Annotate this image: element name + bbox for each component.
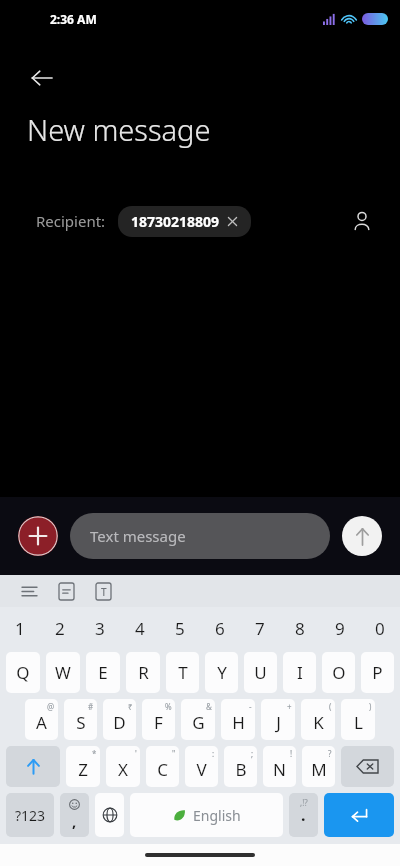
staticText: 1 <box>15 617 25 640</box>
button[interactable]: Back <box>20 56 64 100</box>
button[interactable]: 2 <box>40 607 80 649</box>
staticText: ₹ <box>128 701 133 712</box>
staticText: Z <box>78 758 88 781</box>
button[interactable]: ) <box>341 699 375 740</box>
staticText: L <box>354 711 363 734</box>
button[interactable]: Q <box>6 652 40 693</box>
button[interactable]: % <box>142 699 175 740</box>
button[interactable]: * <box>66 746 100 787</box>
button[interactable]: R <box>126 652 160 693</box>
staticText: 0 <box>375 617 385 640</box>
button[interactable]: Change language <box>95 793 124 837</box>
button[interactable]: Y <box>205 652 238 693</box>
staticText: S <box>76 711 86 734</box>
button[interactable]: Shift <box>6 746 60 787</box>
staticText: N <box>273 758 286 781</box>
button[interactable]: 8 <box>280 607 320 649</box>
button[interactable]: 9 <box>320 607 360 649</box>
staticText: E <box>98 661 108 684</box>
staticText: ; <box>251 748 254 759</box>
button[interactable]: Comma and emoji <box>60 793 89 837</box>
staticText: ( <box>329 701 332 712</box>
staticText: U <box>254 661 267 684</box>
staticText: Text message <box>90 526 186 546</box>
button[interactable]: Add attachment <box>18 516 58 556</box>
button[interactable]: Contacts <box>342 201 382 241</box>
staticText: & <box>206 701 212 712</box>
button[interactable]: Text editing <box>88 576 118 606</box>
button[interactable]: 7 <box>240 607 280 649</box>
button[interactable]: English <box>130 793 283 837</box>
button[interactable]: Clipboard <box>51 576 81 606</box>
button[interactable]: 0 <box>360 607 400 649</box>
button[interactable]: : <box>185 746 218 787</box>
staticText: + <box>287 701 292 712</box>
staticText: I <box>297 661 303 684</box>
staticText: 9 <box>335 617 345 640</box>
staticText: 3 <box>95 617 105 640</box>
staticText: 18730218809 <box>131 212 220 231</box>
button[interactable]: O <box>322 652 355 693</box>
button[interactable]: Enter <box>324 793 394 837</box>
button[interactable]: E <box>86 652 120 693</box>
staticText: B <box>235 758 247 781</box>
staticText: K <box>313 711 324 734</box>
button[interactable]: " <box>146 746 179 787</box>
button[interactable]: T <box>166 652 199 693</box>
staticText: X <box>118 758 128 781</box>
button[interactable]: ? <box>302 746 335 787</box>
button[interactable]: Backspace <box>341 746 394 787</box>
staticText: - <box>249 701 252 712</box>
button[interactable]: Period <box>289 793 318 837</box>
staticText: 4 <box>135 617 145 640</box>
staticText: ! <box>290 748 293 759</box>
staticText: R <box>138 661 149 684</box>
button[interactable]: # <box>64 699 97 740</box>
staticText: W <box>55 661 71 684</box>
button[interactable]: + <box>261 699 295 740</box>
button[interactable]: U <box>244 652 277 693</box>
staticText: H <box>232 711 245 734</box>
button[interactable]: ( <box>301 699 335 740</box>
button[interactable]: 18730218809 <box>118 206 251 237</box>
button[interactable]: 6 <box>200 607 240 649</box>
staticText: * <box>92 748 97 759</box>
button[interactable]: & <box>181 699 215 740</box>
staticText: J <box>276 711 281 734</box>
staticText: C <box>157 758 168 781</box>
button[interactable]: 1 <box>0 607 40 649</box>
staticText: O <box>332 661 346 684</box>
button[interactable]: I <box>283 652 316 693</box>
button[interactable]: 4 <box>120 607 160 649</box>
staticText: # <box>88 701 94 712</box>
staticText: % <box>165 701 172 712</box>
staticText: " <box>172 748 176 759</box>
button[interactable]: Text message <box>70 513 330 559</box>
staticText: : <box>212 748 215 759</box>
staticText: ' <box>135 748 137 759</box>
staticText: ?123 <box>15 806 46 825</box>
button[interactable]: ?123 <box>6 793 54 837</box>
button[interactable]: ' <box>106 746 140 787</box>
staticText: 7 <box>255 617 265 640</box>
button[interactable]: ! <box>263 746 296 787</box>
staticText: , <box>72 811 77 831</box>
staticText: F <box>154 711 163 734</box>
button[interactable]: 3 <box>80 607 120 649</box>
staticText: Recipient: <box>36 211 106 231</box>
button[interactable]: P <box>361 652 394 693</box>
button[interactable]: ; <box>224 746 257 787</box>
button[interactable]: @ <box>25 699 58 740</box>
staticText: D <box>113 711 126 734</box>
button[interactable]: 5 <box>160 607 200 649</box>
staticText: V <box>196 758 207 781</box>
button[interactable]: ₹ <box>103 699 136 740</box>
staticText: G <box>192 711 205 734</box>
button[interactable]: Send <box>342 516 382 556</box>
button[interactable]: - <box>221 699 255 740</box>
staticText: 5 <box>175 617 185 640</box>
button[interactable]: W <box>46 652 80 693</box>
staticText: 8 <box>295 617 305 640</box>
staticText: @ <box>47 701 55 712</box>
button[interactable]: Menu <box>14 576 44 606</box>
